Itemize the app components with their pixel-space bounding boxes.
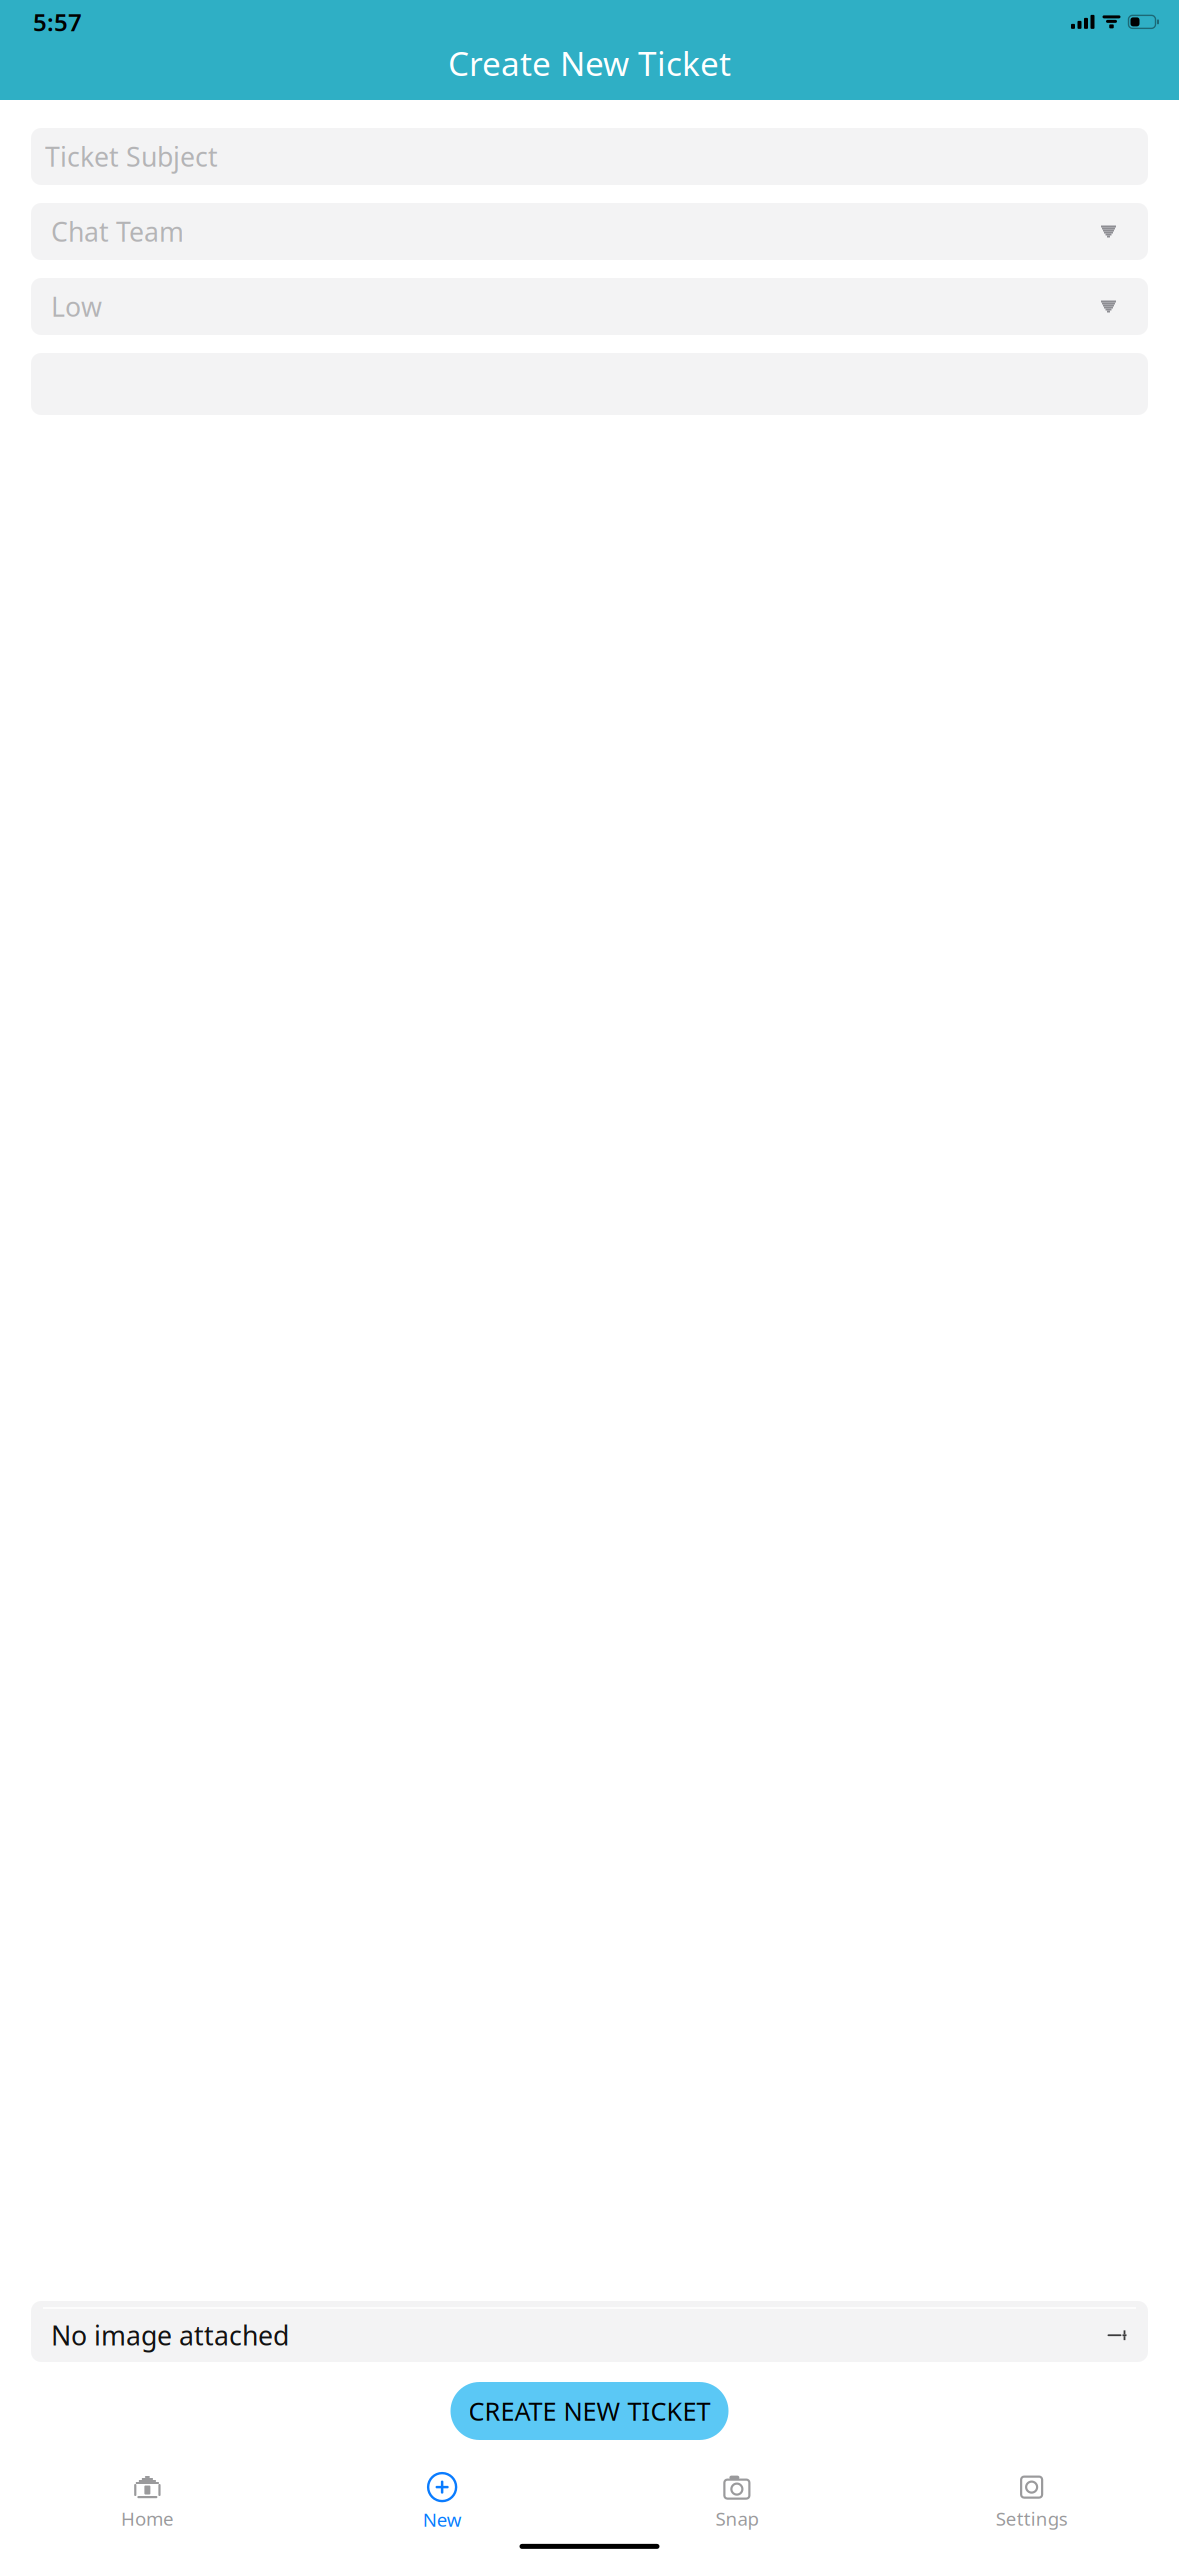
button[interactable]: New [295, 2467, 590, 2536]
staticText: Create New Ticket [448, 41, 731, 85]
staticText: Low [51, 289, 102, 324]
button[interactable]: Settings [884, 2468, 1179, 2535]
staticText: Ticket Subject [45, 139, 218, 174]
staticText: New [423, 2507, 462, 2532]
button[interactable]: Snap [589, 2468, 884, 2535]
staticText: Home [121, 2506, 174, 2531]
button[interactable]: No image attached [31, 2301, 1148, 2362]
button[interactable]: Low [31, 278, 1148, 335]
button[interactable]: Ticket Subject [31, 128, 1148, 185]
button[interactable]: Home [0, 2468, 295, 2535]
staticText: 5:57 [33, 6, 82, 38]
button[interactable]: Chat Team [31, 203, 1148, 260]
staticText: Chat Team [51, 214, 184, 249]
staticText: CREATE NEW TICKET [468, 2394, 710, 2428]
staticText: Settings [996, 2506, 1068, 2531]
staticText: No image attached [51, 2317, 289, 2353]
staticText: Snap [715, 2506, 758, 2531]
button[interactable]: CREATE NEW TICKET [450, 2382, 728, 2440]
